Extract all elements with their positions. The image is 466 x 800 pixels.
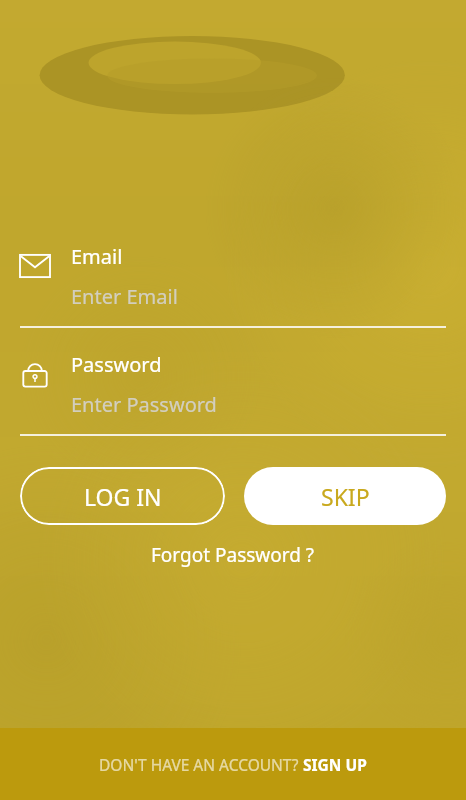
staticText: SKIP	[321, 481, 370, 512]
staticText: Email	[71, 243, 123, 270]
staticText: Enter Password	[71, 391, 217, 418]
button[interactable]: LOG IN	[20, 467, 225, 525]
staticText: Enter Email	[71, 283, 178, 310]
staticText: Forgot Password ?	[151, 542, 315, 568]
button[interactable]: Password	[0, 351, 466, 436]
staticText: LOG IN	[84, 481, 162, 512]
button[interactable]: Email	[0, 243, 466, 328]
button[interactable]: Forgot Password ?	[131, 537, 335, 573]
staticText: Password	[71, 351, 162, 378]
other: Email	[20, 251, 50, 281]
staticText: SIGN UP	[303, 754, 367, 775]
other: Password	[20, 359, 50, 389]
button[interactable]: SKIP	[244, 467, 446, 525]
staticText: DON'T HAVE AN ACCOUNT?	[99, 754, 303, 775]
button[interactable]: DON'T HAVE AN ACCOUNT?	[0, 728, 466, 800]
